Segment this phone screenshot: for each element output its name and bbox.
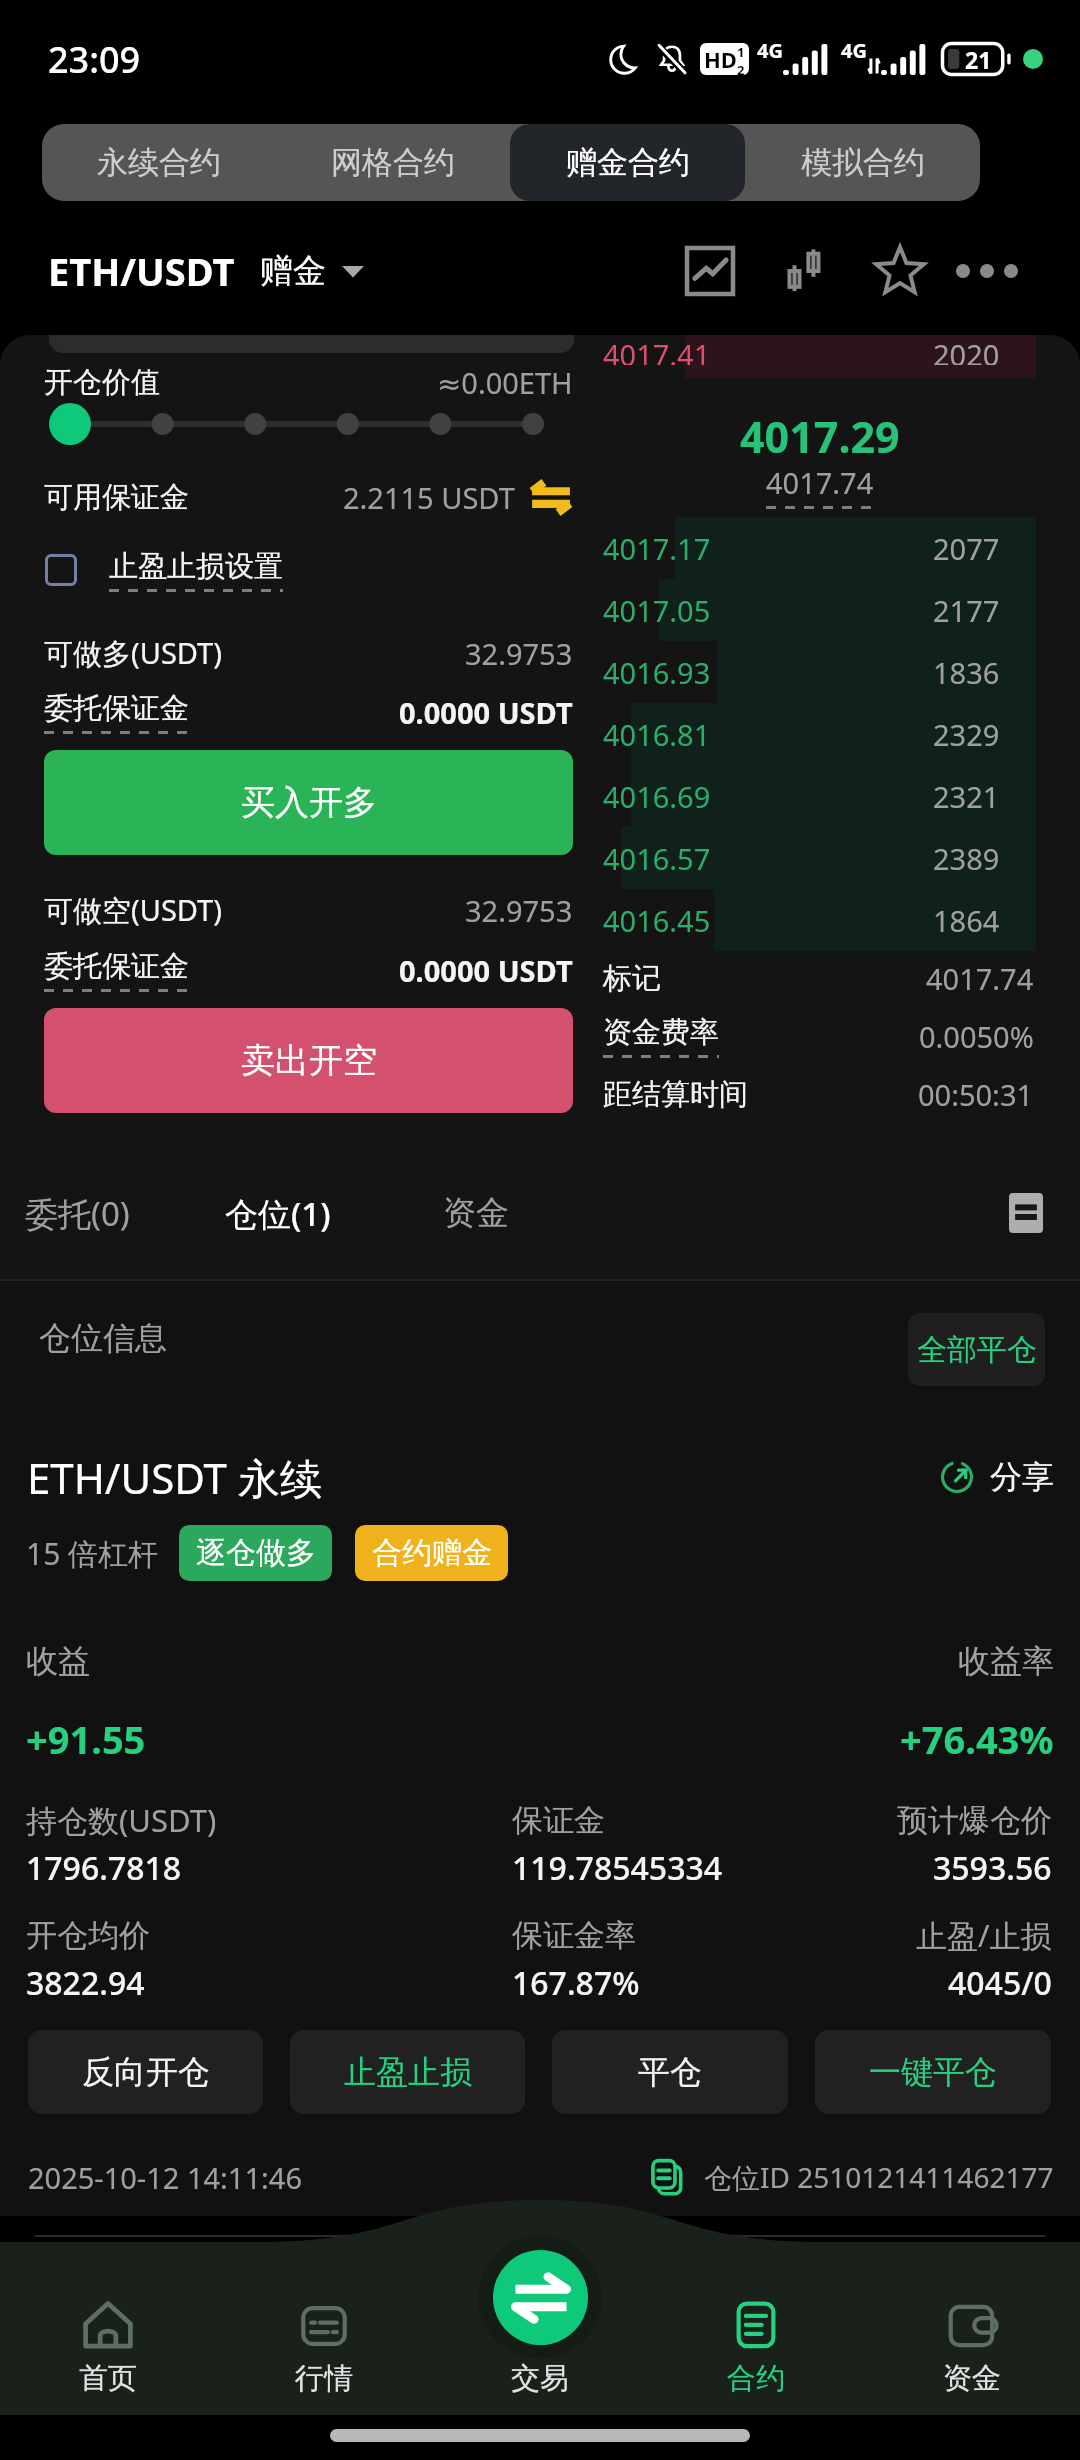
staticText: 止盈/止损 — [916, 1914, 1052, 1956]
staticText: 资金费率 — [603, 1014, 719, 1051]
staticText: 119.78545334 — [512, 1846, 723, 1890]
staticText: 交易 — [511, 2360, 569, 2397]
button[interactable]: 首页 — [38, 2298, 178, 2397]
staticText: 32.9753 — [465, 634, 573, 673]
staticText: 资金 — [443, 1192, 509, 1234]
staticText: 00:50:31 — [918, 1075, 1034, 1114]
staticText: 4017.74 — [926, 959, 1034, 998]
staticText: 1 — [737, 43, 745, 61]
staticText: 4016.45 — [603, 901, 711, 940]
staticText: 1864 — [933, 901, 1000, 940]
staticText: 2329 — [933, 715, 1000, 754]
staticText: 4017.05 — [603, 591, 711, 630]
button[interactable]: 平仓 — [552, 2030, 788, 2114]
staticText: 分享 — [990, 1457, 1054, 1497]
button[interactable]: 资金 — [443, 1182, 509, 1244]
button[interactable]: 买入开多 — [44, 750, 573, 855]
button[interactable]: Favorite — [866, 237, 934, 305]
staticText: 仓位(1) — [225, 1191, 331, 1236]
button[interactable]: 委托(0) — [25, 1181, 130, 1246]
staticText: ETH/USDT 永续 — [27, 1449, 322, 1506]
staticText: 开仓价值 — [44, 364, 160, 401]
button[interactable]: 一键平仓 — [815, 2030, 1051, 2114]
staticText: 开仓均价 — [26, 1916, 150, 1955]
button[interactable]: 模拟合约 — [745, 124, 980, 201]
staticText: 永续合约 — [97, 143, 221, 182]
button[interactable]: 反向开仓 — [28, 2030, 263, 2114]
staticText: 合约 — [727, 2360, 785, 2397]
staticText: 2389 — [933, 839, 1000, 878]
staticText: 模拟合约 — [801, 143, 925, 182]
staticText: 预计爆仓价 — [897, 1801, 1052, 1840]
button[interactable]: 止盈止损设置 — [45, 546, 283, 594]
staticText: 收益率 — [958, 1641, 1054, 1681]
button[interactable]: 全部平仓 — [908, 1313, 1045, 1386]
button[interactable]: Candlestick chart — [772, 238, 838, 304]
button[interactable]: 逐仓做多 — [179, 1525, 332, 1581]
staticText: 2025-10-12 14:11:46 — [28, 2158, 302, 2197]
button[interactable]: 行情 — [254, 2298, 394, 2397]
staticText: 0.0000 USDT — [399, 951, 573, 990]
staticText: 4016.81 — [603, 715, 711, 754]
staticText: 买入开多 — [241, 781, 377, 824]
staticText: 4017.41 — [603, 335, 711, 365]
button[interactable]: Chart — [677, 238, 743, 304]
staticText: 4017.74 — [766, 463, 874, 502]
button[interactable]: 网格合约 — [276, 124, 510, 201]
staticText: 4016.93 — [603, 653, 711, 692]
button[interactable]: Filter — [1000, 1187, 1052, 1239]
button[interactable]: More options — [953, 237, 1021, 305]
staticText: 2.2115 USDT — [343, 478, 515, 517]
staticText: +91.55 — [26, 1713, 146, 1765]
button[interactable]: 止盈止损 — [290, 2030, 525, 2114]
staticText: 仓位信息 — [39, 1318, 167, 1358]
staticText: 合约赠金 — [372, 1534, 492, 1572]
staticText: 1836 — [933, 653, 1000, 692]
staticText: 仓位ID 2510121411462177 — [704, 2158, 1054, 2196]
staticText: 3822.94 — [26, 1961, 145, 2005]
staticText: ETH/USDT — [48, 245, 235, 297]
staticText: 4045/0 — [948, 1961, 1052, 2005]
staticText: 反向开仓 — [82, 2052, 210, 2092]
staticText: 15 倍杠杆 — [26, 1533, 159, 1574]
staticText: 一键平仓 — [869, 2052, 997, 2092]
button[interactable]: 仓位(1) — [225, 1181, 331, 1246]
staticText: 32.9753 — [465, 891, 573, 930]
staticText: 委托保证金 — [44, 690, 189, 727]
staticText: 2 — [737, 61, 745, 75]
staticText: HD — [704, 44, 737, 74]
staticText: 保证金率 — [512, 1916, 636, 1955]
staticText: 4016.69 — [603, 777, 711, 816]
staticText: +76.43% — [900, 1713, 1054, 1765]
button[interactable]: Trade — [493, 2250, 588, 2345]
staticText: 2177 — [933, 591, 1000, 630]
staticText: 距结算时间 — [603, 1076, 748, 1113]
staticText: 0.0050% — [919, 1017, 1034, 1056]
staticText: 4017.17 — [603, 529, 711, 568]
staticText: 首页 — [79, 2360, 137, 2397]
staticText: 资金 — [943, 2360, 1001, 2397]
staticText: 2020 — [933, 335, 1000, 365]
button[interactable]: 永续合约 — [42, 124, 276, 201]
button[interactable]: 资金 — [902, 2298, 1042, 2397]
staticText: 标记 — [603, 960, 661, 997]
button[interactable]: 合约赠金 — [355, 1525, 508, 1581]
button[interactable]: 卖出开空 — [44, 1008, 573, 1113]
staticText: 平仓 — [638, 2052, 702, 2092]
staticText: 167.87% — [512, 1961, 640, 2005]
staticText: 21 — [965, 44, 992, 75]
staticText: 4017.29 — [740, 407, 900, 466]
staticText: 止盈止损 — [344, 2052, 472, 2092]
staticText: 网格合约 — [331, 143, 455, 182]
button[interactable]: 赠金合约 — [510, 124, 745, 201]
staticText: 4G — [757, 37, 783, 64]
staticText: ≈0.00ETH — [437, 363, 573, 402]
staticText: 23:09 — [48, 35, 141, 84]
button[interactable]: 分享 — [938, 1451, 1054, 1503]
staticText: 全部平仓 — [917, 1331, 1037, 1369]
button[interactable]: 合约 — [686, 2298, 826, 2397]
staticText: 赠金合约 — [566, 143, 690, 182]
staticText: 2321 — [933, 777, 1000, 816]
staticText: 逐仓做多 — [196, 1534, 316, 1572]
staticText: 4016.57 — [603, 839, 711, 878]
